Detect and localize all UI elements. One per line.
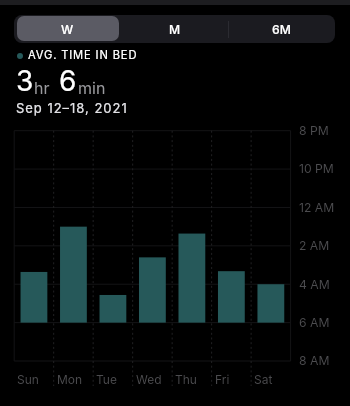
staticText: W [61,22,74,37]
staticText: 6 AM [299,315,330,330]
staticText: Mon [57,372,83,387]
staticText: 3 [16,64,34,98]
staticText: Thu [175,372,197,387]
staticText: 8 AM [299,353,330,368]
button[interactable]: M [121,15,228,43]
staticText: Sep 12–18, 2021 [16,100,128,116]
staticText: M [169,22,181,37]
staticText: Tue [96,372,117,387]
staticText: Sat [254,372,273,387]
button[interactable]: 6M [228,15,335,43]
staticText: 8 PM [299,123,329,138]
staticText: AVG. TIME IN BED [28,48,138,62]
staticText: hr [34,78,50,97]
staticText: 10 PM [299,161,334,176]
staticText: 2 AM [299,238,330,253]
staticText: Wed [136,372,162,387]
staticText: min [78,78,106,97]
button[interactable]: W [14,15,121,43]
staticText: Fri [215,372,230,387]
staticText: 4 AM [299,277,330,292]
staticText: 6 [59,64,77,98]
staticText: 6M [272,22,291,37]
staticText: 12 AM [299,200,335,215]
staticText: Sun [17,372,39,387]
